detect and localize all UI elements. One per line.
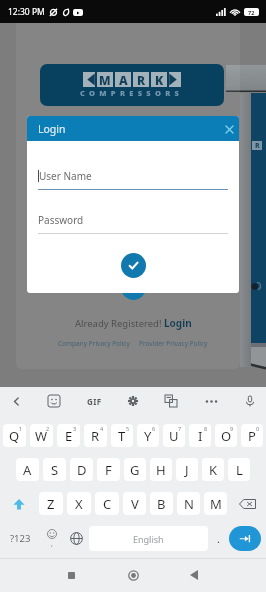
staticText: ?123 — [10, 532, 31, 545]
staticText: D — [77, 461, 87, 479]
staticText: A — [23, 461, 32, 479]
staticText: P — [248, 427, 256, 445]
staticText: W — [35, 427, 48, 445]
button[interactable]: . — [209, 526, 227, 551]
staticText: 12:30 PM — [8, 6, 45, 18]
staticText: Y — [144, 427, 152, 445]
staticText: R — [91, 427, 100, 445]
staticText: 2 — [46, 425, 50, 432]
button[interactable]: M — [204, 492, 227, 515]
staticText: Password — [38, 213, 84, 227]
staticText: O — [221, 427, 232, 445]
staticText: S — [51, 461, 59, 479]
button[interactable]: N — [177, 492, 200, 515]
staticText: 7 — [178, 425, 182, 432]
staticText: GIF — [87, 396, 102, 407]
button[interactable]: Submit — [121, 253, 146, 278]
button[interactable]: Enter — [229, 526, 261, 551]
staticText: 9 — [230, 425, 234, 432]
button[interactable]: G — [124, 458, 146, 481]
staticText: , — [51, 539, 53, 549]
staticText: M — [99, 72, 111, 87]
button[interactable]: C — [95, 492, 119, 515]
staticText: A — [119, 72, 128, 87]
button[interactable]: ?123 — [0, 526, 40, 551]
staticText: E — [65, 427, 73, 445]
staticText: K — [155, 72, 164, 87]
staticText: 4 — [100, 425, 104, 432]
button[interactable]: O — [215, 424, 237, 447]
button[interactable]: J — [176, 458, 198, 481]
button[interactable]: H — [150, 458, 172, 481]
button[interactable]: Settings — [122, 390, 144, 412]
button[interactable]: X — [67, 492, 91, 515]
staticText: R — [137, 72, 146, 87]
button[interactable]: A — [16, 458, 39, 481]
button[interactable]: Close — [220, 120, 238, 138]
button[interactable]: L — [228, 458, 250, 481]
staticText: M — [210, 495, 222, 513]
staticText: X — [75, 495, 83, 513]
staticText: 6 — [152, 425, 156, 432]
button[interactable]: Y — [137, 424, 159, 447]
button[interactable]: I — [189, 424, 211, 447]
staticText: F — [105, 461, 112, 479]
staticText: Z — [47, 495, 55, 513]
button[interactable]: P — [241, 424, 263, 447]
button[interactable]: Already Registered! — [75, 316, 192, 330]
button[interactable]: Shift — [3, 492, 35, 515]
button[interactable]: E — [57, 424, 80, 447]
button[interactable]: W — [30, 424, 53, 447]
button[interactable]: Backspace — [231, 492, 263, 515]
button[interactable]: Change language — [64, 526, 88, 551]
button[interactable]: GIF — [82, 389, 106, 413]
staticText: COMPRESSORS — [80, 88, 184, 98]
button[interactable]: Emoji — [40, 526, 64, 551]
button[interactable]: Provider Privacy Policy — [139, 339, 208, 348]
staticText: . — [217, 531, 220, 546]
button[interactable]: Translate — [160, 390, 182, 412]
staticText: K — [209, 461, 218, 479]
button[interactable]: S — [43, 458, 66, 481]
button[interactable]: More — [199, 389, 223, 413]
staticText: T — [118, 427, 126, 445]
staticText: J — [185, 461, 189, 479]
staticText: 5 — [126, 425, 130, 432]
button[interactable]: V — [123, 492, 146, 515]
button[interactable]: Sticker — [43, 390, 65, 412]
staticText: B — [157, 495, 166, 513]
staticText: English — [133, 533, 164, 545]
button[interactable]: Voice input — [239, 390, 261, 412]
staticText: N — [184, 495, 194, 513]
staticText: 3 — [73, 425, 77, 432]
button[interactable]: B — [150, 492, 173, 515]
staticText: R — [255, 141, 260, 150]
staticText: User Name — [39, 169, 92, 183]
button[interactable]: English — [89, 526, 208, 551]
staticText: Login — [164, 316, 192, 330]
button[interactable]: D — [70, 458, 93, 481]
button[interactable]: Back — [5, 390, 27, 412]
staticText: Already Registered! — [75, 317, 164, 330]
staticText: Login — [38, 122, 66, 136]
button[interactable]: Company Privacy Policy — [58, 339, 130, 348]
button[interactable]: Recents — [59, 558, 83, 592]
button[interactable]: Back — [182, 558, 206, 592]
button[interactable]: Home — [121, 558, 145, 592]
staticText: C — [103, 495, 112, 513]
staticText: 8 — [204, 425, 208, 432]
button[interactable]: Q — [3, 424, 26, 447]
button[interactable]: R — [84, 424, 107, 447]
staticText: G — [130, 461, 140, 479]
staticText: H — [156, 461, 166, 479]
button[interactable]: F — [97, 458, 120, 481]
staticText: L — [236, 461, 243, 479]
button[interactable]: U — [163, 424, 185, 447]
button[interactable]: T — [111, 424, 133, 447]
staticText: 1 — [19, 425, 23, 432]
staticText: V — [131, 495, 139, 513]
button[interactable]: K — [202, 458, 224, 481]
staticText: 72 — [248, 9, 255, 16]
staticText: I — [198, 427, 203, 445]
button[interactable]: Z — [39, 492, 63, 515]
